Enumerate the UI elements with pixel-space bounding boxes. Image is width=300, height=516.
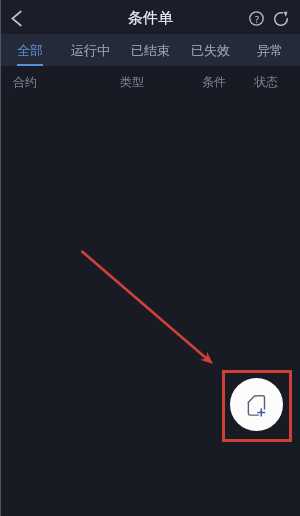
button[interactable]: New conditional order [230, 378, 283, 431]
button[interactable]: Help [242, 4, 271, 33]
staticText: 全部 [17, 42, 43, 58]
button[interactable]: 已结束 [120, 34, 180, 66]
staticText: 状态 [254, 74, 278, 89]
button[interactable]: 运行中 [60, 34, 120, 66]
staticText: 类型 [120, 74, 144, 89]
button[interactable]: 全部 [0, 34, 60, 66]
staticText: 合约 [13, 74, 37, 89]
staticText: 已结束 [131, 42, 170, 58]
button[interactable]: Refresh [266, 4, 295, 33]
staticText: 条件单 [128, 9, 173, 28]
staticText: 异常 [257, 42, 283, 58]
button[interactable]: Back [0, 2, 32, 34]
button[interactable]: 异常 [240, 34, 300, 66]
staticText: 运行中 [71, 42, 110, 58]
staticText: 已失效 [191, 42, 230, 58]
staticText: 条件 [202, 74, 226, 89]
staticText: ? [255, 13, 259, 25]
button[interactable]: 已失效 [180, 34, 240, 66]
